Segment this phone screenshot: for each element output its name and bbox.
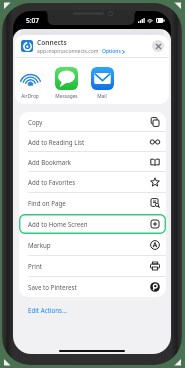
staticText: Add to Favorites bbox=[28, 178, 150, 186]
button[interactable]: Copy bbox=[19, 112, 166, 131]
button[interactable]: Add to Favorites bbox=[19, 172, 166, 192]
button[interactable]: Add Bookmark bbox=[19, 152, 166, 171]
button[interactable]: Options bbox=[102, 48, 125, 55]
button[interactable]: Save to Pinterest bbox=[19, 277, 166, 297]
staticText: Mail bbox=[97, 93, 107, 100]
staticText: Connects bbox=[37, 38, 67, 47]
button[interactable]: Markup bbox=[19, 235, 166, 255]
staticText: 5:07 bbox=[26, 16, 40, 25]
button[interactable]: AirDrop bbox=[15, 59, 48, 100]
staticText: Messages bbox=[55, 93, 78, 100]
button[interactable]: Add to Home Screen bbox=[19, 214, 166, 234]
button[interactable]: Edit Actions... bbox=[19, 300, 67, 320]
button[interactable]: Mail bbox=[84, 59, 120, 100]
staticText: Markup bbox=[28, 241, 150, 249]
staticText: app.inspirusconnects.com bbox=[37, 48, 99, 55]
staticText: Add to Reading List bbox=[28, 138, 150, 146]
staticText: Add to Home Screen bbox=[28, 220, 150, 228]
staticText: Print bbox=[28, 262, 150, 270]
staticText: Find on Page bbox=[28, 199, 150, 207]
staticText: Add Bookmark bbox=[28, 158, 150, 166]
button[interactable]: Find on Page bbox=[19, 193, 166, 213]
button[interactable]: Messages bbox=[48, 59, 84, 100]
staticText: AirDrop bbox=[21, 93, 39, 100]
button[interactable]: Add to Reading List bbox=[19, 132, 166, 151]
button[interactable]: Print bbox=[19, 256, 166, 276]
staticText: Options bbox=[102, 48, 121, 55]
staticText: Copy bbox=[28, 118, 150, 126]
staticText: Save to Pinterest bbox=[28, 283, 150, 291]
staticText: Edit Actions... bbox=[28, 306, 67, 314]
button[interactable]: Close bbox=[152, 40, 164, 52]
